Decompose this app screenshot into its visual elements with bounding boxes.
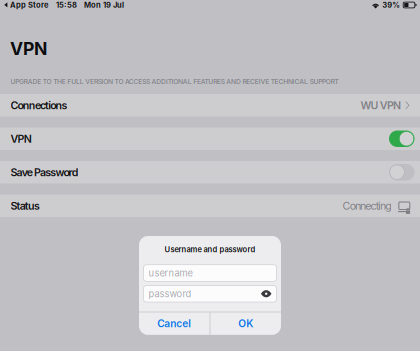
staticText: Username and password: [164, 245, 255, 254]
button[interactable]: VPN: [0, 127, 420, 150]
staticText: Mon 19 Jul: [84, 0, 124, 10]
button[interactable]: App Store: [0, 0, 49, 10]
button[interactable]: Save Password: [0, 161, 420, 183]
staticText: VPN: [10, 132, 32, 145]
staticText: Connecting: [342, 199, 392, 212]
staticText: 39%: [382, 0, 400, 10]
staticText: Save Password: [10, 166, 79, 179]
staticText: VPN: [10, 38, 47, 59]
staticText: 15:58: [56, 0, 77, 10]
staticText: Connections: [10, 99, 67, 112]
staticText: OK: [238, 317, 253, 330]
staticText: username: [148, 267, 192, 279]
button[interactable]: Status: [0, 194, 420, 217]
staticText: password: [148, 288, 191, 299]
button[interactable]: Cancel: [139, 312, 210, 335]
staticText: Status: [10, 199, 40, 212]
staticText: UPGRADE TO THE FULL VERSION TO ACCESS AD…: [10, 77, 338, 86]
staticText: Cancel: [157, 317, 191, 330]
staticText: WU VPN: [360, 99, 401, 112]
button[interactable]: OK: [210, 312, 281, 335]
staticText: App Store: [10, 0, 49, 10]
button[interactable]: Connections: [0, 94, 420, 116]
